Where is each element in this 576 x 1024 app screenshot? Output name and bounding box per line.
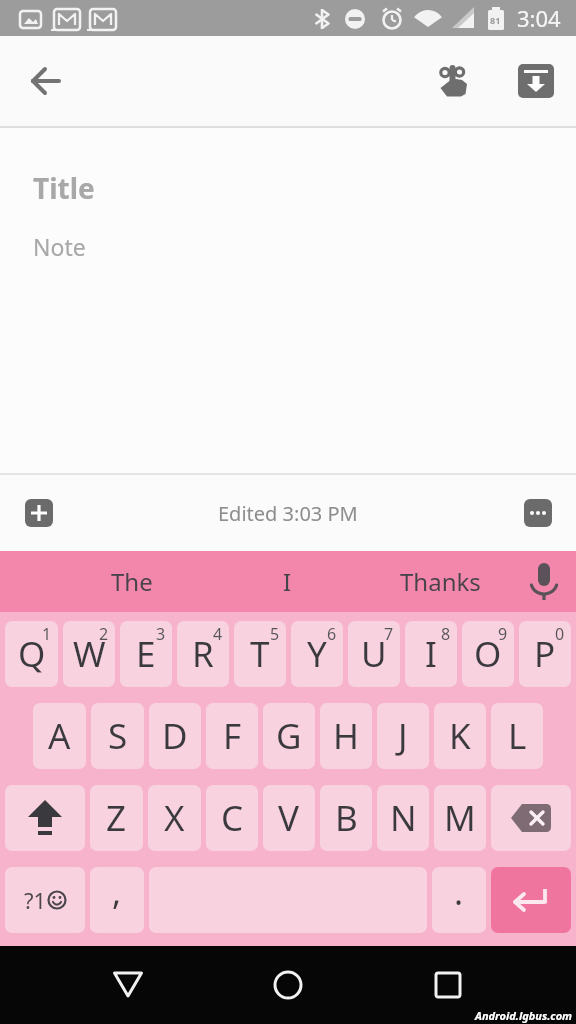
- button[interactable]: X: [148, 785, 201, 851]
- button[interactable]: [100, 957, 156, 1013]
- staticText: C: [221, 794, 244, 842]
- button[interactable]: V: [263, 785, 315, 851]
- staticText: K: [449, 712, 471, 760]
- staticText: The: [111, 565, 153, 598]
- button[interactable]: S: [91, 703, 144, 769]
- staticText: F: [223, 712, 242, 760]
- staticText: J: [398, 712, 408, 760]
- button[interactable]: ,: [90, 867, 144, 933]
- staticText: Title: [33, 169, 95, 207]
- button[interactable]: N: [377, 785, 429, 851]
- staticText: 5: [270, 623, 280, 645]
- staticText: Y: [307, 630, 327, 678]
- staticText: 3:04: [517, 3, 561, 33]
- staticText: 3: [156, 623, 166, 645]
- button[interactable]: [524, 499, 552, 527]
- staticText: I: [425, 630, 437, 678]
- button[interactable]: [510, 55, 562, 107]
- staticText: A: [48, 712, 71, 760]
- staticText: R: [192, 630, 214, 678]
- staticText: ,: [112, 869, 122, 915]
- button[interactable]: M: [434, 785, 486, 851]
- button[interactable]: [491, 785, 571, 851]
- staticText: 4: [213, 623, 223, 645]
- staticText: G: [276, 712, 302, 760]
- staticText: H: [333, 712, 359, 760]
- button[interactable]: [260, 957, 316, 1013]
- button[interactable]: [520, 558, 568, 606]
- button[interactable]: D: [149, 703, 201, 769]
- staticText: M: [444, 794, 476, 842]
- button[interactable]: B: [320, 785, 372, 851]
- staticText: 0: [555, 623, 565, 645]
- button[interactable]: T: [234, 621, 286, 687]
- staticText: E: [136, 630, 156, 678]
- staticText: U: [361, 630, 387, 678]
- button[interactable]: [18, 54, 72, 108]
- button[interactable]: K: [434, 703, 486, 769]
- staticText: S: [108, 712, 128, 760]
- staticText: Edited 3:03 PM: [218, 500, 358, 527]
- button[interactable]: O: [462, 621, 514, 687]
- button[interactable]: U: [348, 621, 400, 687]
- staticText: X: [164, 794, 185, 842]
- staticText: P: [534, 630, 556, 678]
- button[interactable]: I: [221, 551, 353, 612]
- button[interactable]: G: [263, 703, 315, 769]
- staticText: Note: [33, 231, 86, 262]
- button[interactable]: ?1: [5, 867, 85, 933]
- staticText: D: [162, 712, 188, 760]
- staticText: Q: [18, 630, 46, 678]
- staticText: 9: [498, 623, 508, 645]
- staticText: Thanks: [400, 565, 481, 598]
- button[interactable]: I: [405, 621, 457, 687]
- staticText: ?1: [24, 885, 47, 915]
- staticText: W: [73, 630, 106, 678]
- staticText: L: [508, 712, 527, 760]
- button[interactable]: Y: [291, 621, 343, 687]
- button[interactable]: H: [320, 703, 372, 769]
- staticText: 8: [441, 623, 451, 645]
- staticText: 1: [42, 623, 52, 645]
- button[interactable]: .: [432, 867, 486, 933]
- button[interactable]: [5, 785, 85, 851]
- button[interactable]: Thanks: [374, 551, 506, 612]
- staticText: V: [278, 794, 300, 842]
- button[interactable]: J: [377, 703, 429, 769]
- staticText: 7: [384, 623, 394, 645]
- staticText: 6: [327, 623, 337, 645]
- button[interactable]: C: [206, 785, 258, 851]
- staticText: O: [474, 630, 502, 678]
- staticText: T: [250, 630, 270, 678]
- button[interactable]: [491, 867, 571, 933]
- staticText: .: [454, 869, 464, 915]
- staticText: Z: [106, 794, 127, 842]
- staticText: N: [390, 794, 417, 842]
- button[interactable]: Z: [90, 785, 143, 851]
- button[interactable]: [420, 957, 476, 1013]
- staticText: Android.lgbus.com: [475, 1008, 573, 1023]
- staticText: 81: [490, 14, 501, 26]
- button[interactable]: F: [206, 703, 258, 769]
- staticText: 2: [99, 623, 109, 645]
- button[interactable]: Q: [5, 621, 58, 687]
- button[interactable]: P: [519, 621, 571, 687]
- button[interactable]: The: [66, 551, 198, 612]
- button[interactable]: W: [63, 621, 115, 687]
- button[interactable]: [428, 55, 480, 107]
- staticText: I: [283, 565, 292, 598]
- button[interactable]: R: [177, 621, 229, 687]
- button[interactable]: E: [120, 621, 172, 687]
- button[interactable]: [25, 499, 53, 527]
- button[interactable]: A: [33, 703, 86, 769]
- staticText: B: [335, 794, 358, 842]
- button[interactable]: L: [491, 703, 543, 769]
